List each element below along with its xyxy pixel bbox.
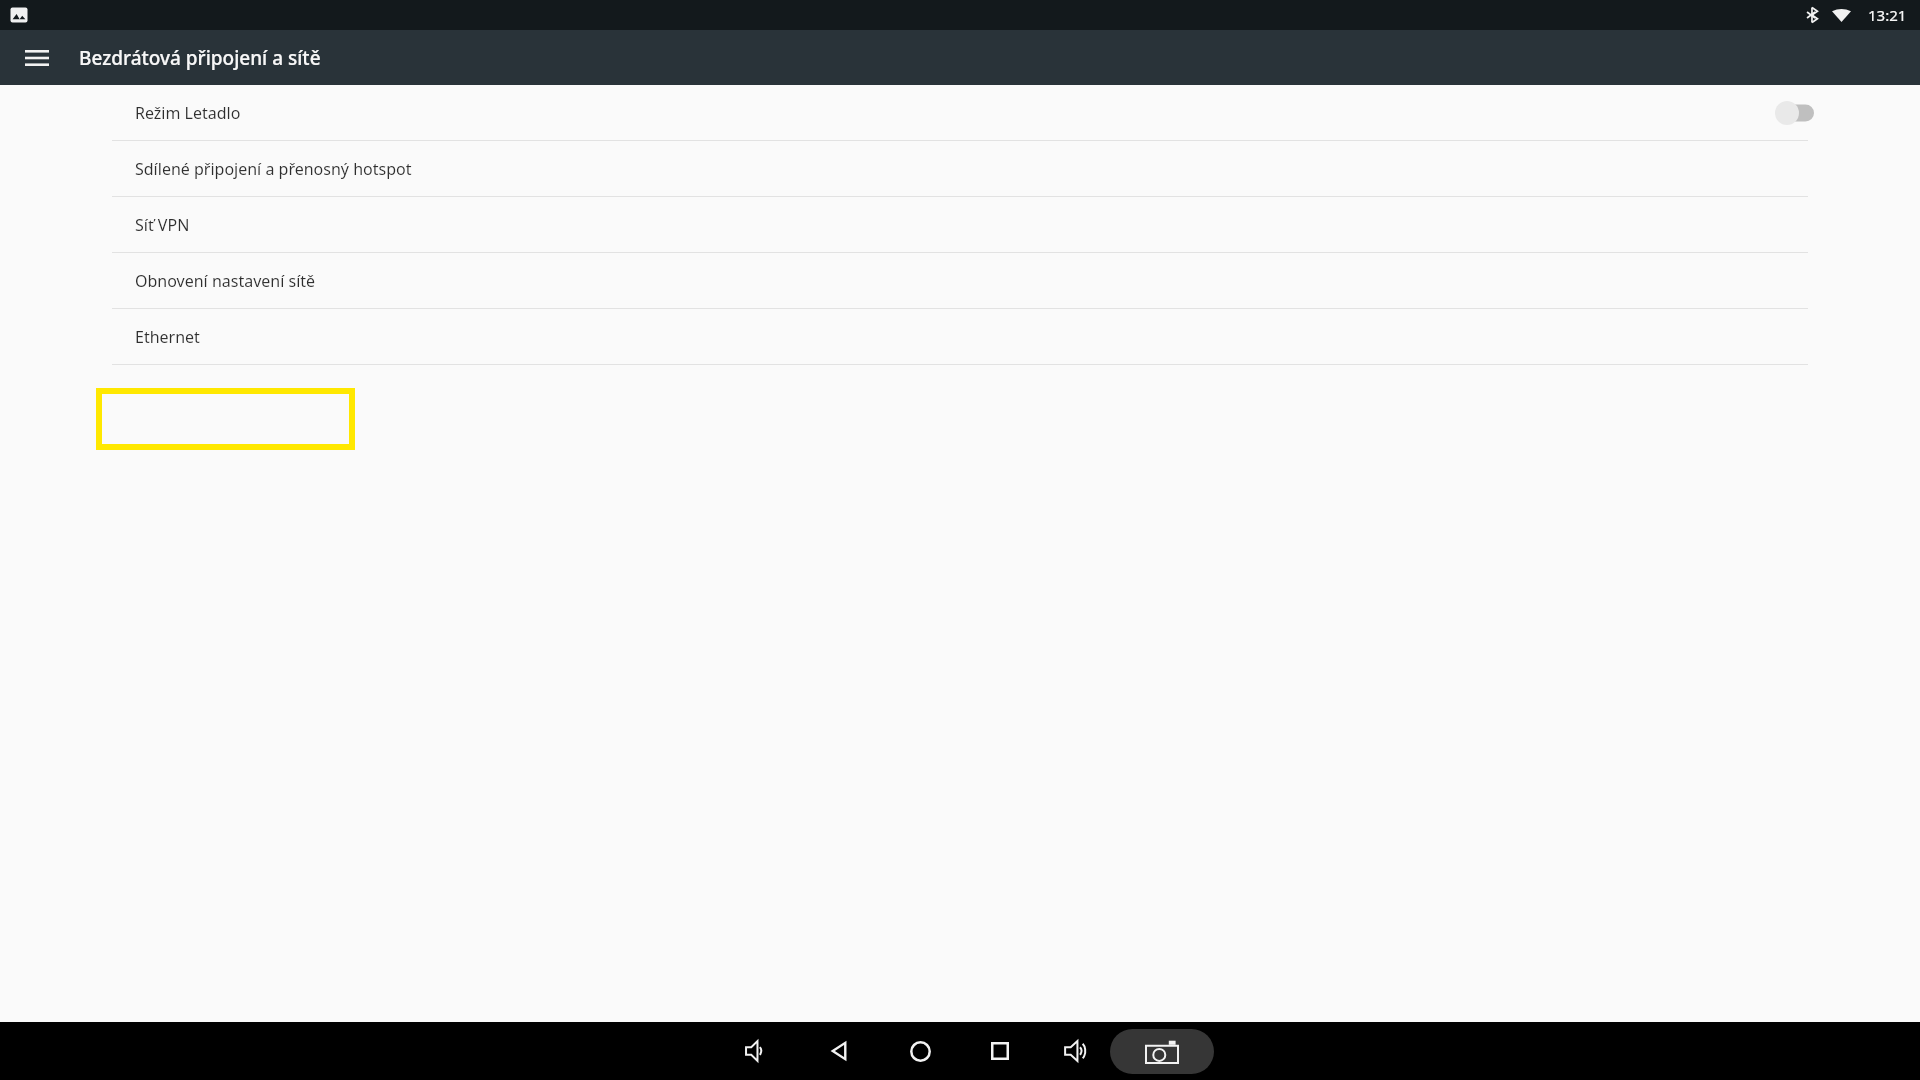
staticText: Bezdrátová připojení a sítě	[79, 45, 321, 71]
button[interactable]: Zvýšit hlasitost	[1051, 1022, 1105, 1080]
staticText: Režim Letadlo	[135, 102, 241, 124]
staticText: Ethernet	[135, 326, 200, 348]
button[interactable]: Obnovení nastavení sítě	[0, 253, 1920, 308]
button[interactable]: Přehled	[973, 1022, 1027, 1080]
button[interactable]: Domů	[893, 1022, 947, 1080]
button[interactable]: Snížit hlasitost	[731, 1022, 785, 1080]
button[interactable]: Sdílené připojení a přenosný hotspot	[0, 141, 1920, 196]
staticText: 13:21	[1868, 5, 1907, 25]
button[interactable]: Ethernet	[0, 309, 1920, 364]
button[interactable]: Zpět	[813, 1022, 867, 1080]
button[interactable]: Menu	[13, 34, 61, 82]
button[interactable]: Režim Letadlo	[1770, 93, 1828, 133]
button[interactable]: Snímek obrazovky	[1110, 1029, 1214, 1074]
button[interactable]: Režim Letadlo	[0, 85, 1920, 140]
button[interactable]: Síť VPN	[0, 197, 1920, 252]
staticText: Obnovení nastavení sítě	[135, 270, 316, 292]
staticText: Síť VPN	[135, 214, 190, 236]
staticText: Sdílené připojení a přenosný hotspot	[135, 158, 412, 180]
